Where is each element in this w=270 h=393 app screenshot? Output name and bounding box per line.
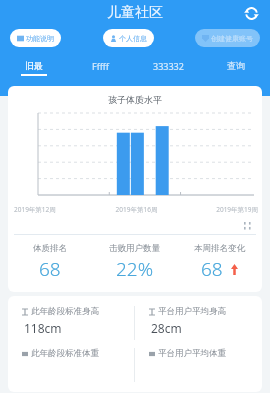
button[interactable]: Fffff [67, 55, 134, 81]
staticText: 个人信息 [119, 34, 147, 43]
staticText: Fffff [92, 60, 110, 72]
button[interactable]: 333332 [134, 55, 202, 81]
button[interactable]: Refresh [240, 2, 262, 24]
button[interactable]: 个人信息 [103, 29, 154, 47]
button[interactable]: 击败用户数量 [92, 243, 177, 282]
staticText: 儿童社区 [107, 4, 163, 22]
staticText: 旧最 [25, 60, 43, 71]
button[interactable]: Expand [242, 220, 254, 232]
staticText: 22% [116, 256, 154, 282]
staticText: 68 [39, 256, 61, 282]
staticText: 2019年第12周 [14, 205, 96, 214]
staticText: 平台用户平均身高 [158, 306, 226, 317]
button[interactable]: 创建健康账号 [195, 29, 260, 47]
staticText: 平台用户平均体重 [158, 348, 226, 359]
button[interactable]: 查询 [202, 55, 270, 81]
staticText: 创建健康账号 [211, 34, 253, 43]
staticText: 查询 [227, 60, 245, 71]
button[interactable]: 体质排名 [8, 243, 92, 282]
staticText: 333332 [153, 60, 184, 72]
button[interactable]: 本周排名变化 [177, 243, 262, 282]
staticText: 此年龄段标准体重 [31, 348, 99, 359]
button[interactable]: 平台用户平均体重 [135, 348, 262, 359]
staticText: 功能说明 [26, 34, 54, 43]
button[interactable]: 平台用户平均身高 [135, 306, 262, 336]
staticText: 28cm [151, 320, 182, 336]
staticText: 118cm [24, 320, 62, 336]
staticText: 2019年第16周 [96, 205, 177, 214]
button[interactable]: 功能说明 [10, 29, 61, 47]
button[interactable]: 旧最 [0, 55, 67, 81]
staticText: 体质排名 [33, 243, 67, 254]
button[interactable]: 此年龄段标准身高 [8, 306, 134, 336]
staticText: 击败用户数量 [109, 243, 160, 254]
button[interactable]: 此年龄段标准体重 [8, 348, 134, 359]
staticText: 68 [201, 256, 223, 282]
staticText: 2019年第19周 [177, 205, 258, 214]
staticText: 本周排名变化 [194, 243, 245, 254]
staticText: 孩子体质水平 [8, 94, 262, 105]
staticText: 此年龄段标准身高 [31, 306, 99, 317]
